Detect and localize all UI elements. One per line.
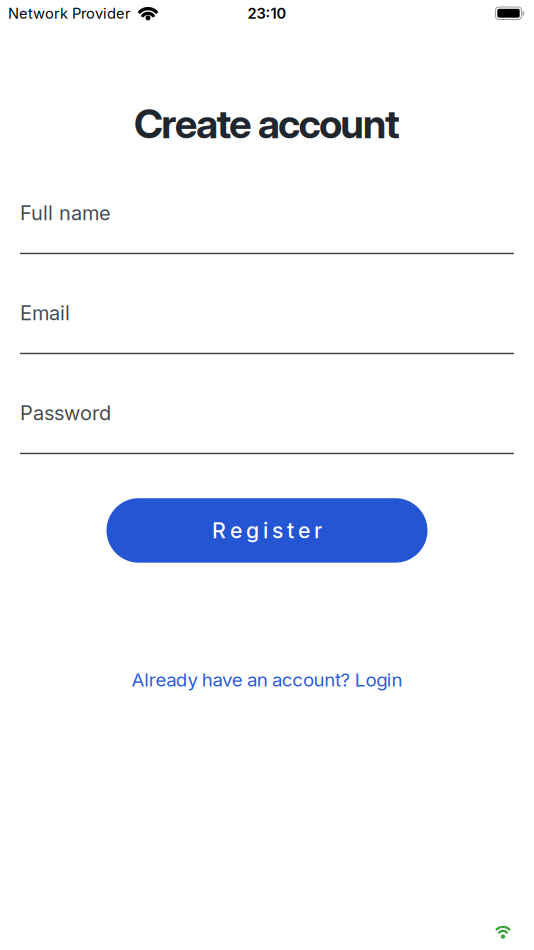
staticText: Email bbox=[20, 301, 70, 325]
staticText: Create account bbox=[134, 100, 400, 147]
button[interactable]: Full name bbox=[20, 201, 514, 254]
button[interactable]: Already have an account? Login bbox=[132, 669, 402, 691]
staticText: Network Provider bbox=[8, 5, 131, 22]
button[interactable]: Register bbox=[106, 498, 427, 563]
staticText: Already have an account? Login bbox=[132, 669, 402, 691]
staticText: 23:10 bbox=[247, 5, 286, 22]
staticText: Full name bbox=[20, 201, 111, 225]
staticText: R e g i s t e r bbox=[212, 518, 322, 543]
button[interactable]: Password bbox=[20, 401, 514, 454]
staticText: Password bbox=[20, 401, 111, 425]
button[interactable]: Email bbox=[20, 301, 514, 354]
